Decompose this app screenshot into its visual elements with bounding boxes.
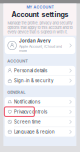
staticText: Privacy controls <box>14 109 47 114</box>
staticText: ACCOUNT <box>7 59 28 63</box>
button[interactable]: Sign-in & security <box>5 76 75 85</box>
button[interactable]: Jordan Avery <box>5 37 75 54</box>
button[interactable]: Notifications <box>5 97 75 107</box>
button[interactable]: Privacy controls <box>5 107 75 117</box>
button[interactable]: Language & region <box>5 127 75 137</box>
button[interactable]: Screen time <box>5 117 75 127</box>
staticText: Account settings <box>11 10 68 19</box>
staticText: Notifications <box>14 99 40 104</box>
staticText: Sign-in & security <box>14 78 53 83</box>
staticText: Language & region <box>14 129 55 134</box>
staticText: Manage the profile, privacy and security… <box>7 21 72 34</box>
staticText: Personal details <box>14 68 47 73</box>
button[interactable]: Personal details <box>5 66 75 75</box>
staticText: GENERAL <box>7 90 25 95</box>
staticText: MY ACCOUNT <box>26 5 53 9</box>
staticText: Jordan Avery <box>19 38 51 44</box>
staticText: Apple Account, iCloud and more <box>19 44 62 53</box>
staticText: Screen time <box>14 119 41 124</box>
